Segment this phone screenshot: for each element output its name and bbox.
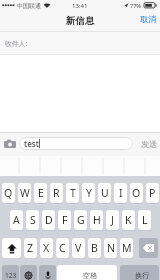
button[interactable]: C <box>56 238 69 258</box>
button[interactable]: N <box>104 238 117 258</box>
staticText: T <box>70 186 76 200</box>
staticText: K <box>125 213 132 227</box>
button[interactable]: Dictation <box>39 265 56 280</box>
button[interactable]: 发送 <box>139 137 159 150</box>
button[interactable]: U <box>98 183 111 203</box>
staticText: D <box>45 213 53 227</box>
button[interactable]: I <box>114 183 127 203</box>
button[interactable]: Z <box>24 238 37 258</box>
staticText: C <box>59 241 66 255</box>
staticText: G <box>77 213 85 227</box>
button[interactable]: A <box>10 210 23 230</box>
staticText: U <box>101 186 109 200</box>
staticText: W <box>20 186 30 200</box>
button[interactable]: S <box>26 210 39 230</box>
button[interactable]: V <box>72 238 85 258</box>
button[interactable]: E <box>34 183 47 203</box>
button[interactable]: 取消 <box>136 11 160 27</box>
staticText: H <box>93 213 101 227</box>
button[interactable]: 空格 <box>57 265 117 280</box>
button[interactable]: D <box>42 210 55 230</box>
button[interactable]: T <box>66 183 79 203</box>
staticText: S <box>30 213 36 227</box>
staticText: A <box>13 213 20 227</box>
button[interactable]: Numbers <box>2 265 19 280</box>
staticText: J <box>111 213 114 227</box>
staticText: 123 <box>5 271 17 280</box>
staticText: Z <box>27 241 34 255</box>
staticText: 取消 <box>140 14 157 24</box>
button[interactable]: J <box>106 210 119 230</box>
staticText: test <box>24 138 39 149</box>
button[interactable]: X <box>40 238 53 258</box>
button[interactable]: G <box>74 210 87 230</box>
staticText: O <box>132 186 141 200</box>
staticText: F <box>62 213 68 227</box>
staticText: 新信息 <box>66 15 95 27</box>
staticText: V <box>75 241 82 255</box>
button[interactable]: B <box>88 238 101 258</box>
button[interactable]: F <box>58 210 71 230</box>
staticText: X <box>43 241 50 255</box>
staticText: M <box>122 241 132 255</box>
staticText: 收件人: <box>5 39 28 48</box>
staticText: N <box>107 241 115 255</box>
button[interactable]: Backspace <box>139 238 158 258</box>
staticText: B <box>91 241 98 255</box>
staticText: P <box>149 186 156 200</box>
staticText: E <box>38 186 44 200</box>
staticText: 换行 <box>135 271 150 280</box>
staticText: 空格 <box>83 271 98 280</box>
button[interactable]: Switch keyboard <box>20 265 37 280</box>
button[interactable]: R <box>50 183 63 203</box>
button[interactable]: Y <box>82 183 95 203</box>
button[interactable]: 收件人: <box>0 32 160 55</box>
button[interactable]: 换行 <box>120 265 159 280</box>
button[interactable]: K <box>122 210 135 230</box>
button[interactable]: P <box>146 183 159 203</box>
button[interactable]: O <box>130 183 143 203</box>
staticText: I <box>119 186 123 200</box>
staticText: 中国联通 <box>17 2 41 10</box>
staticText: Y <box>86 186 92 200</box>
staticText: L <box>142 213 148 227</box>
staticText: R <box>53 186 60 200</box>
button[interactable]: test <box>19 137 133 150</box>
button[interactable]: Shift <box>2 238 21 258</box>
button[interactable]: W <box>18 183 31 203</box>
staticText: Q <box>4 186 13 200</box>
button[interactable]: L <box>138 210 151 230</box>
staticText: 77% <box>130 2 141 9</box>
button[interactable]: Camera <box>4 139 16 149</box>
staticText: 13:41 <box>72 2 88 10</box>
button[interactable]: Q <box>2 183 15 203</box>
button[interactable]: M <box>120 238 133 258</box>
button[interactable]: H <box>90 210 103 230</box>
staticText: 发送 <box>141 139 158 149</box>
